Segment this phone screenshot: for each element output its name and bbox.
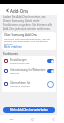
button[interactable]: Toggle	[47, 69, 54, 73]
staticText: Funktionen	[3, 52, 19, 56]
button[interactable]: Recent apps	[0, 115, 22, 123]
staticText: Mehr Add-Ons herunterladen	[10, 108, 48, 112]
staticText: Erspart Ihnen Zeit	[10, 62, 30, 65]
staticText: Internet	[10, 72, 19, 75]
staticText: Samsung Internet	[10, 85, 30, 88]
staticText: Add-Ons	[10, 8, 29, 14]
staticText: Add-Ons sind Zusatzfunktionen, die Sie e…	[4, 37, 50, 46]
button[interactable]: Home	[22, 115, 43, 123]
button[interactable]: Back	[43, 115, 64, 123]
button[interactable]: Mehr Add-Ons herunterladen	[3, 107, 55, 113]
button[interactable]: Über Samsung Add-Ons	[2, 32, 56, 50]
button[interactable]: Einstellungen	[2, 56, 56, 66]
staticText: Unterstützung für Webseiten	[10, 68, 46, 72]
button[interactable]: Übernehmen für	[2, 76, 56, 92]
staticText: Übernehmen für	[10, 81, 31, 85]
staticText: Einstellungen	[10, 58, 27, 62]
button[interactable]: Download progress	[47, 81, 54, 88]
staticText: Laden Sie Add-Ons herunter, um Ihrem Sam…	[3, 15, 53, 31]
button[interactable]: Back	[3, 6, 11, 14]
button[interactable]: Mehr erfahren	[4, 45, 22, 49]
staticText: Über Samsung Add-Ons	[4, 33, 38, 37]
button[interactable]: Toggle	[47, 59, 54, 63]
button[interactable]: Unterstützung für Webseiten	[2, 66, 56, 76]
